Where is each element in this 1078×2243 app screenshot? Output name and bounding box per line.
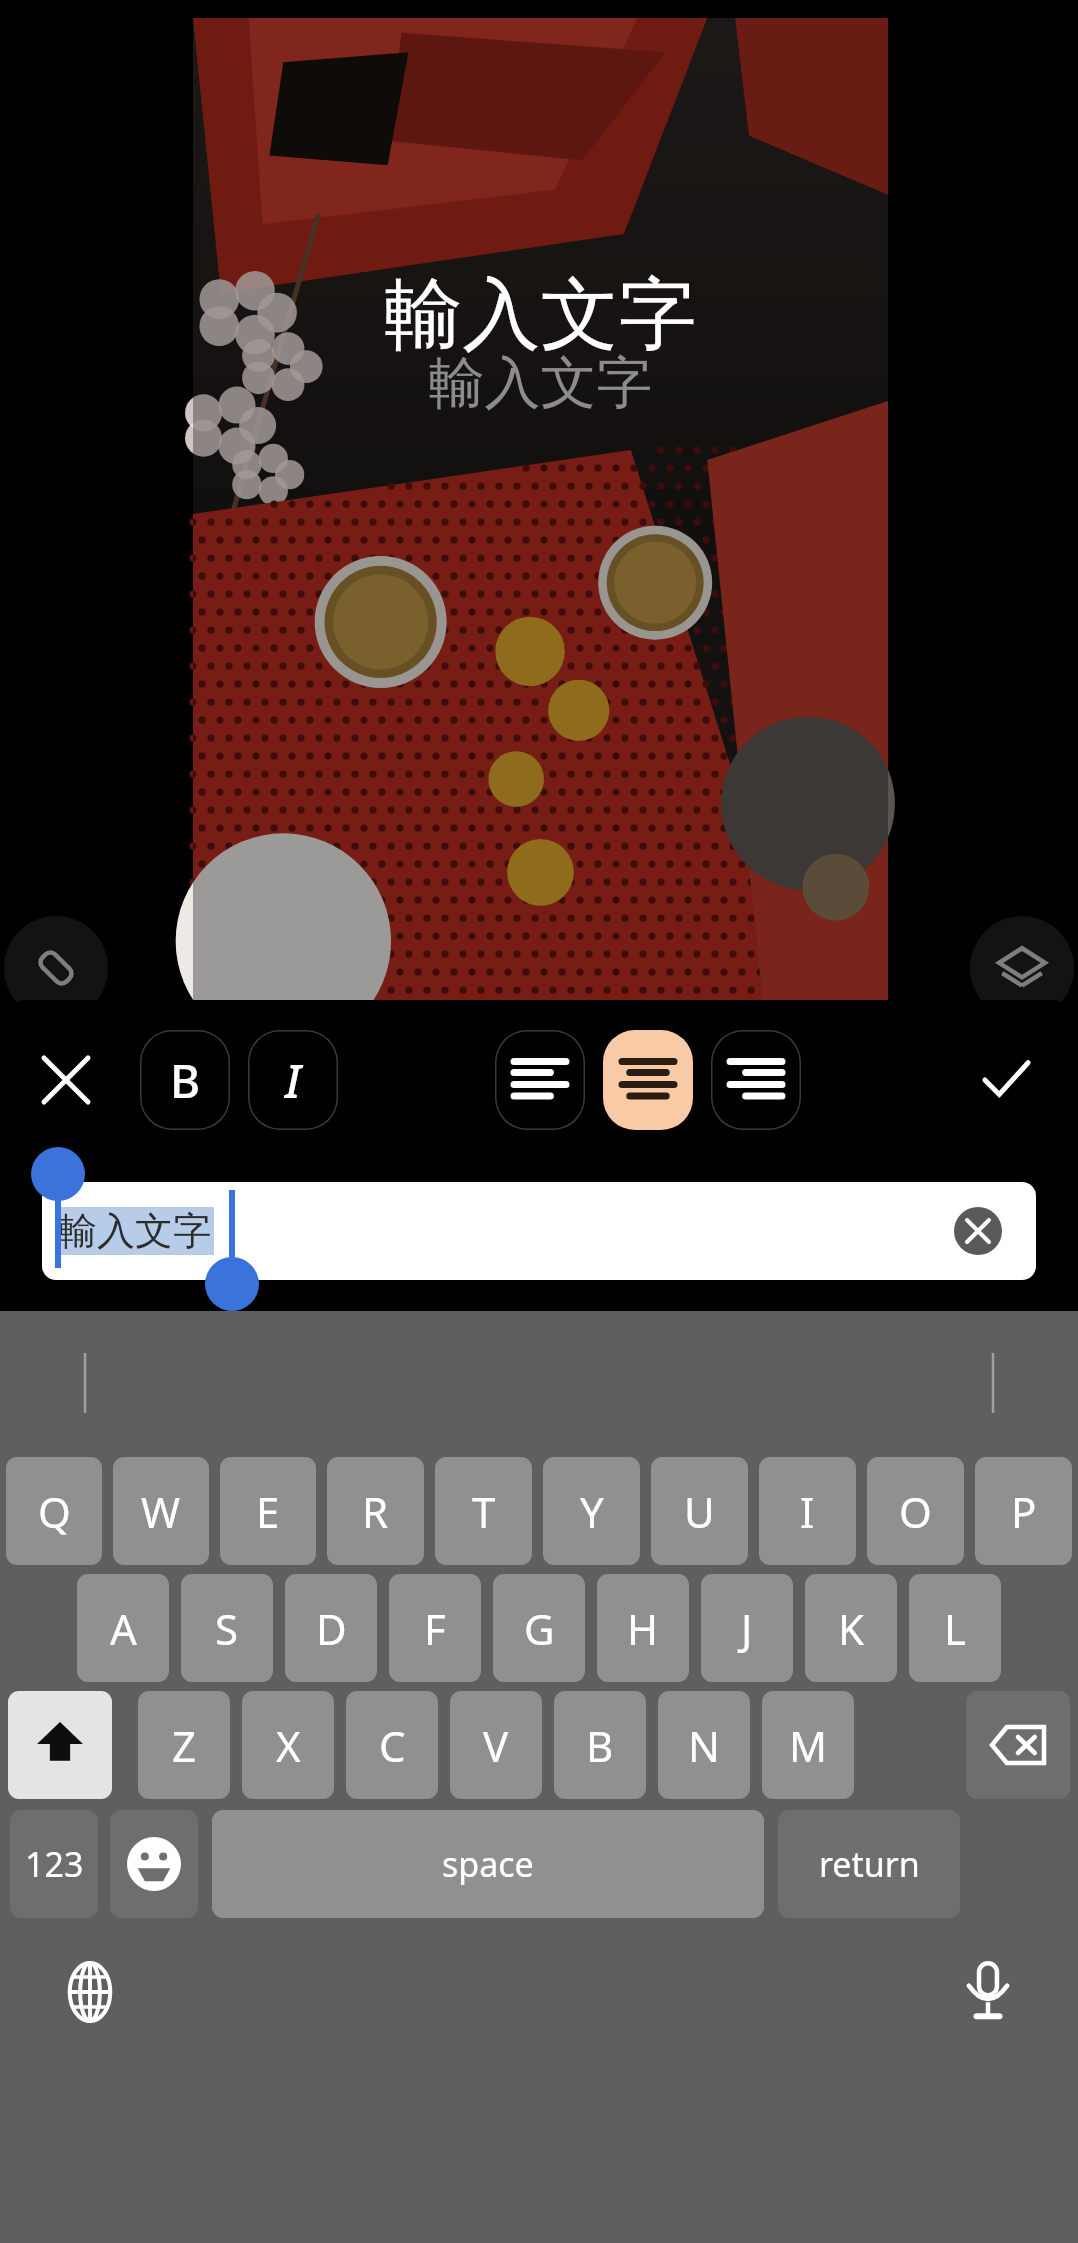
staticText: R bbox=[362, 1483, 389, 1540]
button[interactable]: 123 bbox=[10, 1810, 98, 1918]
button[interactable]: G bbox=[493, 1574, 585, 1682]
staticText: 輸入文字 bbox=[193, 266, 888, 364]
button[interactable]: Q bbox=[6, 1457, 102, 1565]
staticText: C bbox=[379, 1717, 406, 1774]
button[interactable]: Align left bbox=[495, 1030, 585, 1130]
button[interactable]: D bbox=[285, 1574, 377, 1682]
button[interactable]: space bbox=[212, 1810, 764, 1918]
button[interactable]: V bbox=[450, 1691, 542, 1799]
button[interactable]: H bbox=[597, 1574, 689, 1682]
staticText: T bbox=[472, 1483, 496, 1540]
staticText: D bbox=[316, 1600, 347, 1657]
button[interactable]: Clear text bbox=[954, 1207, 1002, 1255]
staticText: H bbox=[627, 1600, 659, 1657]
staticText: 輸入文字 bbox=[59, 1207, 211, 1255]
staticText: I bbox=[800, 1483, 815, 1540]
staticText: I bbox=[285, 1049, 301, 1112]
button[interactable]: E bbox=[220, 1457, 316, 1565]
button[interactable]: Italic bbox=[248, 1030, 338, 1130]
staticText: P bbox=[1011, 1483, 1037, 1540]
button[interactable]: C bbox=[346, 1691, 438, 1799]
staticText: F bbox=[424, 1600, 446, 1657]
button[interactable]: R bbox=[327, 1457, 424, 1565]
button[interactable]: I bbox=[759, 1457, 856, 1565]
staticText: B bbox=[170, 1049, 201, 1112]
staticText: G bbox=[524, 1600, 555, 1657]
button[interactable]: Close bbox=[18, 1032, 114, 1128]
button[interactable]: 輸入文字 bbox=[42, 1182, 1036, 1280]
button[interactable]: Dictation bbox=[946, 1950, 1030, 2034]
button[interactable]: T bbox=[435, 1457, 532, 1565]
button[interactable]: Eraser bbox=[4, 916, 108, 1020]
button[interactable]: Align center bbox=[603, 1030, 693, 1130]
staticText: Q bbox=[38, 1483, 71, 1540]
staticText: return bbox=[819, 1841, 920, 1887]
staticText: O bbox=[899, 1483, 932, 1540]
button[interactable]: Confirm bbox=[958, 1032, 1054, 1128]
staticText: K bbox=[838, 1600, 864, 1657]
staticText: Z bbox=[172, 1717, 197, 1774]
button[interactable]: Layers bbox=[970, 916, 1074, 1020]
staticText: V bbox=[483, 1717, 509, 1774]
button[interactable]: A bbox=[77, 1574, 169, 1682]
staticText: B bbox=[586, 1717, 614, 1774]
staticText: X bbox=[276, 1717, 301, 1774]
staticText: E bbox=[256, 1483, 280, 1540]
staticText: W bbox=[141, 1483, 181, 1540]
button[interactable]: N bbox=[658, 1691, 750, 1799]
staticText: 輸入文字 bbox=[193, 348, 888, 419]
button[interactable]: Y bbox=[543, 1457, 640, 1565]
button[interactable]: U bbox=[651, 1457, 748, 1565]
staticText: N bbox=[688, 1717, 720, 1774]
staticText: M bbox=[789, 1717, 828, 1774]
staticText: S bbox=[215, 1600, 239, 1657]
staticText: L bbox=[944, 1600, 967, 1657]
button[interactable]: L bbox=[909, 1574, 1001, 1682]
button[interactable]: return bbox=[778, 1810, 960, 1918]
button[interactable]: Z bbox=[138, 1691, 230, 1799]
staticText: Y bbox=[580, 1483, 604, 1540]
button[interactable]: Align right bbox=[711, 1030, 801, 1130]
button[interactable]: F bbox=[389, 1574, 481, 1682]
button[interactable]: Bold bbox=[140, 1030, 230, 1130]
button[interactable]: X bbox=[242, 1691, 334, 1799]
button[interactable]: Change keyboard bbox=[48, 1950, 132, 2034]
button[interactable]: Emoji bbox=[110, 1810, 198, 1918]
button[interactable]: Backspace bbox=[966, 1691, 1070, 1799]
button[interactable]: P bbox=[975, 1457, 1072, 1565]
button[interactable]: O bbox=[867, 1457, 964, 1565]
button[interactable]: J bbox=[701, 1574, 793, 1682]
button[interactable]: Shift bbox=[8, 1691, 112, 1799]
button[interactable]: M bbox=[762, 1691, 854, 1799]
button[interactable]: K bbox=[805, 1574, 897, 1682]
button[interactable]: B bbox=[554, 1691, 646, 1799]
staticText: 123 bbox=[25, 1841, 84, 1887]
button[interactable]: S bbox=[181, 1574, 273, 1682]
staticText: J bbox=[741, 1600, 753, 1657]
staticText: space bbox=[442, 1841, 534, 1887]
button[interactable]: W bbox=[113, 1457, 209, 1565]
staticText: A bbox=[110, 1600, 137, 1657]
staticText: U bbox=[684, 1483, 715, 1540]
